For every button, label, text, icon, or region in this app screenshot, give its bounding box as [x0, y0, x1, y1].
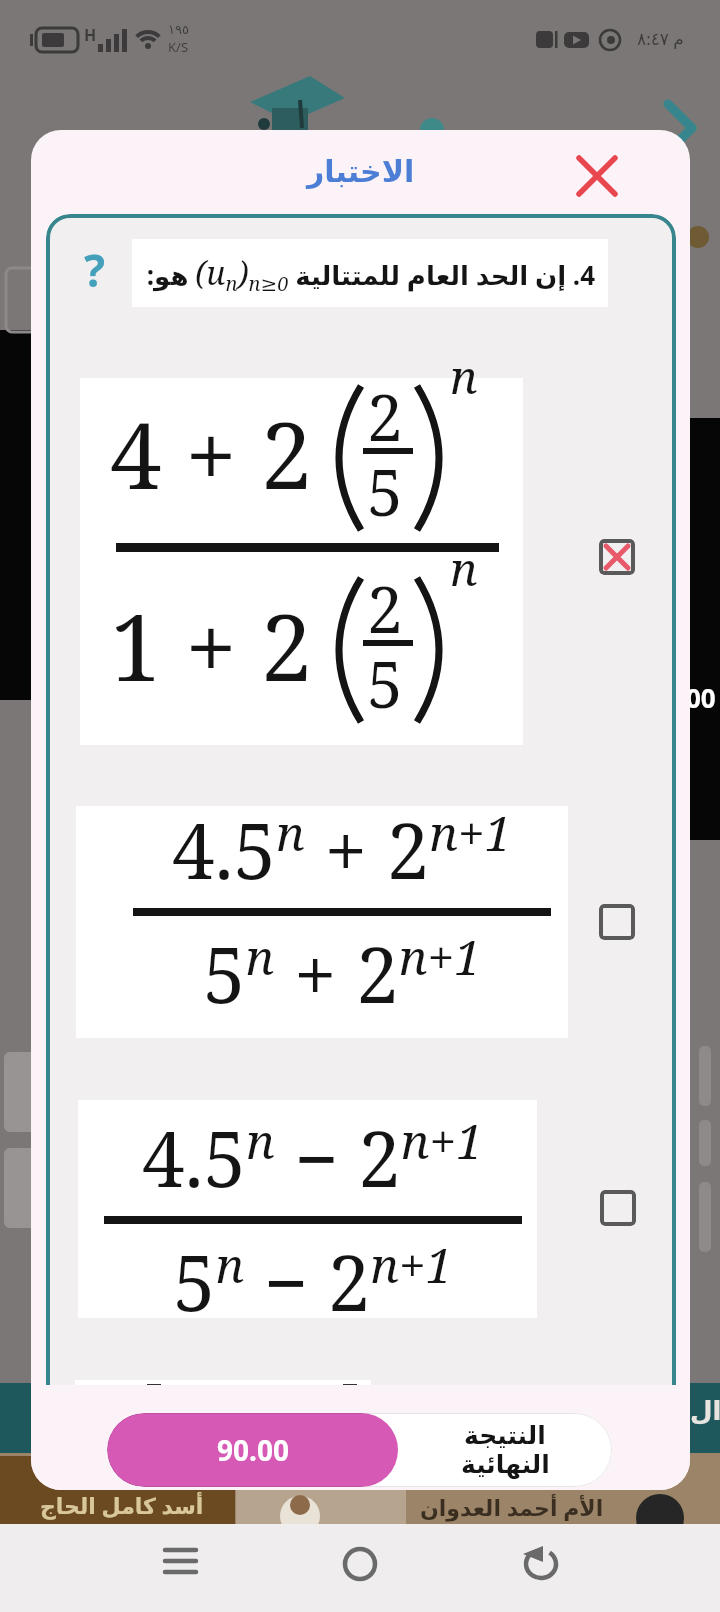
staticText: 00	[686, 680, 716, 715]
button[interactable]	[330, 1534, 390, 1594]
staticText: أسد كامل الحاج	[40, 1490, 204, 1520]
staticText: H	[84, 24, 97, 46]
staticText: الأم أحمد العدوان	[420, 1492, 604, 1522]
button[interactable]: 4 + 2	[80, 378, 523, 745]
staticText: 4.5n + 2n+1	[172, 798, 512, 902]
button[interactable]	[510, 1534, 570, 1594]
button[interactable]: 4.5n + 2n+1	[76, 806, 568, 1038]
staticText: n	[450, 345, 478, 408]
staticText: ال	[690, 1396, 720, 1426]
button[interactable]	[567, 146, 627, 206]
button[interactable]	[150, 1534, 210, 1594]
staticText: 5	[367, 640, 403, 727]
staticText: ١٩٥	[168, 22, 189, 37]
staticText: 90.00	[217, 1431, 289, 1469]
staticText: 5n + 2n+1	[203, 922, 482, 1026]
staticText: م ٨:٤٧	[637, 27, 684, 50]
button[interactable]: 90.00	[107, 1413, 612, 1487]
staticText: النتيجة	[464, 1421, 546, 1450]
staticText: 2	[367, 565, 403, 652]
staticText: 4.5n − 2n+1	[142, 1106, 484, 1210]
staticText: النهائية	[461, 1450, 550, 1479]
button[interactable]: 4.5n − 2n+1	[78, 1100, 537, 1318]
staticText: الاختبار	[307, 154, 415, 189]
staticText: n	[450, 537, 478, 600]
staticText: 4 + 2	[110, 391, 313, 516]
staticText: ?	[84, 240, 105, 300]
button[interactable]	[600, 1190, 636, 1226]
staticText: K/S	[168, 38, 189, 56]
staticText: 1 + 2	[110, 583, 313, 708]
staticText: 5	[367, 448, 403, 535]
staticText: 4. إن الحد العام للمتتالية ⁦(un)n≥0⁩ هو:	[146, 251, 595, 296]
staticText: 5n − 2n+1	[173, 1230, 453, 1324]
button[interactable]	[599, 539, 635, 575]
button[interactable]	[599, 904, 635, 940]
staticText: 2	[367, 373, 403, 460]
